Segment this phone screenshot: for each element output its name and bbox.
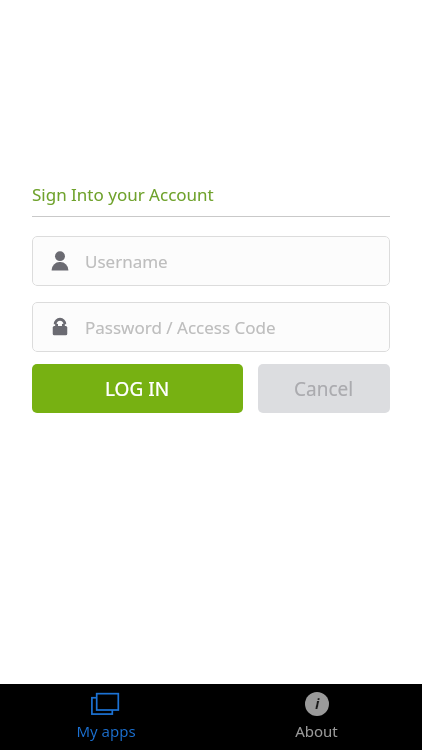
staticText: About bbox=[295, 721, 338, 741]
button[interactable]: My apps bbox=[0, 684, 211, 750]
button[interactable]: Username bbox=[32, 236, 390, 286]
staticText: My apps bbox=[76, 721, 136, 741]
button[interactable]: Password / Access Code bbox=[32, 302, 390, 352]
button[interactable]: Cancel bbox=[258, 364, 390, 413]
other: About bbox=[305, 692, 329, 716]
staticText: Cancel bbox=[294, 376, 354, 402]
other: My apps bbox=[91, 692, 121, 716]
staticText: LOG IN bbox=[105, 376, 170, 402]
staticText: Sign Into your Account bbox=[32, 183, 214, 206]
staticText: i bbox=[315, 693, 320, 713]
button[interactable]: LOG IN bbox=[32, 364, 243, 413]
button[interactable]: About bbox=[211, 684, 422, 750]
staticText: Password / Access Code bbox=[85, 316, 276, 339]
staticText: Username bbox=[85, 250, 168, 273]
